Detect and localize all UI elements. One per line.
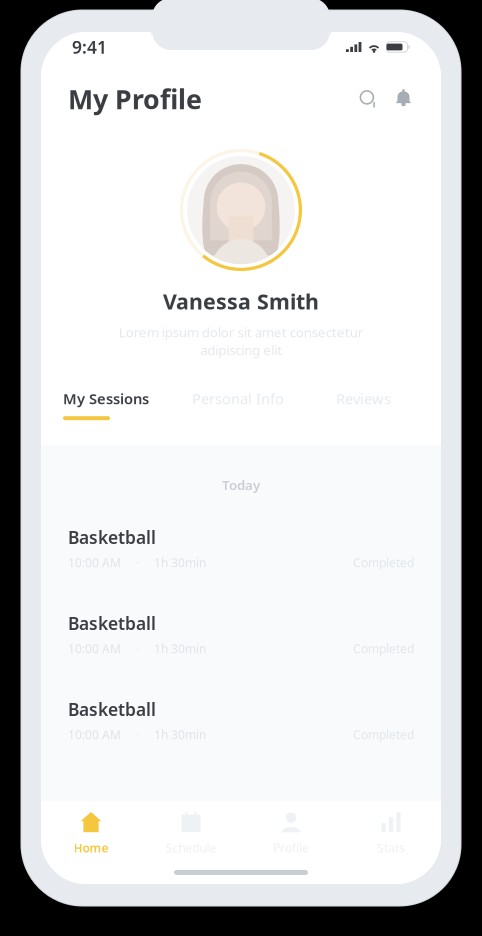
button[interactable]: Basketball [41, 526, 441, 612]
staticText: Stats [377, 840, 405, 856]
staticText: Completed [353, 641, 414, 657]
staticText: Basketball [68, 698, 156, 721]
staticText: Lorem ipsum dolor sit amet consectetur a… [118, 323, 363, 359]
staticText: Vanessa Smith [163, 287, 319, 315]
staticText: Basketball [68, 612, 156, 635]
staticText: 10:00 AM [68, 641, 121, 657]
staticText: Home [73, 840, 108, 856]
staticText: 1h 30min [154, 641, 206, 657]
button[interactable]: My Sessions [63, 389, 149, 420]
button[interactable]: Notifications [393, 88, 414, 109]
staticText: 9:41 [72, 35, 107, 58]
staticText: 1h 30min [154, 727, 206, 743]
staticText: 10:00 AM [68, 727, 121, 743]
staticText: Completed [353, 555, 414, 571]
button[interactable]: Schedule [141, 810, 241, 856]
button[interactable]: Reviews [336, 389, 391, 420]
staticText: 1h 30min [154, 555, 206, 571]
staticText: Completed [353, 727, 414, 743]
staticText: Personal Info [192, 389, 284, 408]
staticText: Schedule [165, 840, 216, 856]
button[interactable]: Basketball [41, 612, 441, 698]
button[interactable]: Search [358, 88, 379, 109]
button[interactable]: Stats [341, 810, 441, 856]
staticText: My Profile [68, 81, 202, 117]
button[interactable]: Personal Info [192, 389, 284, 420]
staticText: Basketball [68, 526, 156, 549]
staticText: 10:00 AM [68, 555, 121, 571]
button[interactable]: Profile [241, 810, 341, 856]
staticText: Profile [273, 840, 309, 856]
button[interactable]: Basketball [41, 698, 441, 784]
staticText: Reviews [336, 389, 391, 408]
button[interactable]: Home [41, 810, 141, 856]
staticText: Today [222, 476, 260, 494]
staticText: My Sessions [63, 389, 149, 408]
